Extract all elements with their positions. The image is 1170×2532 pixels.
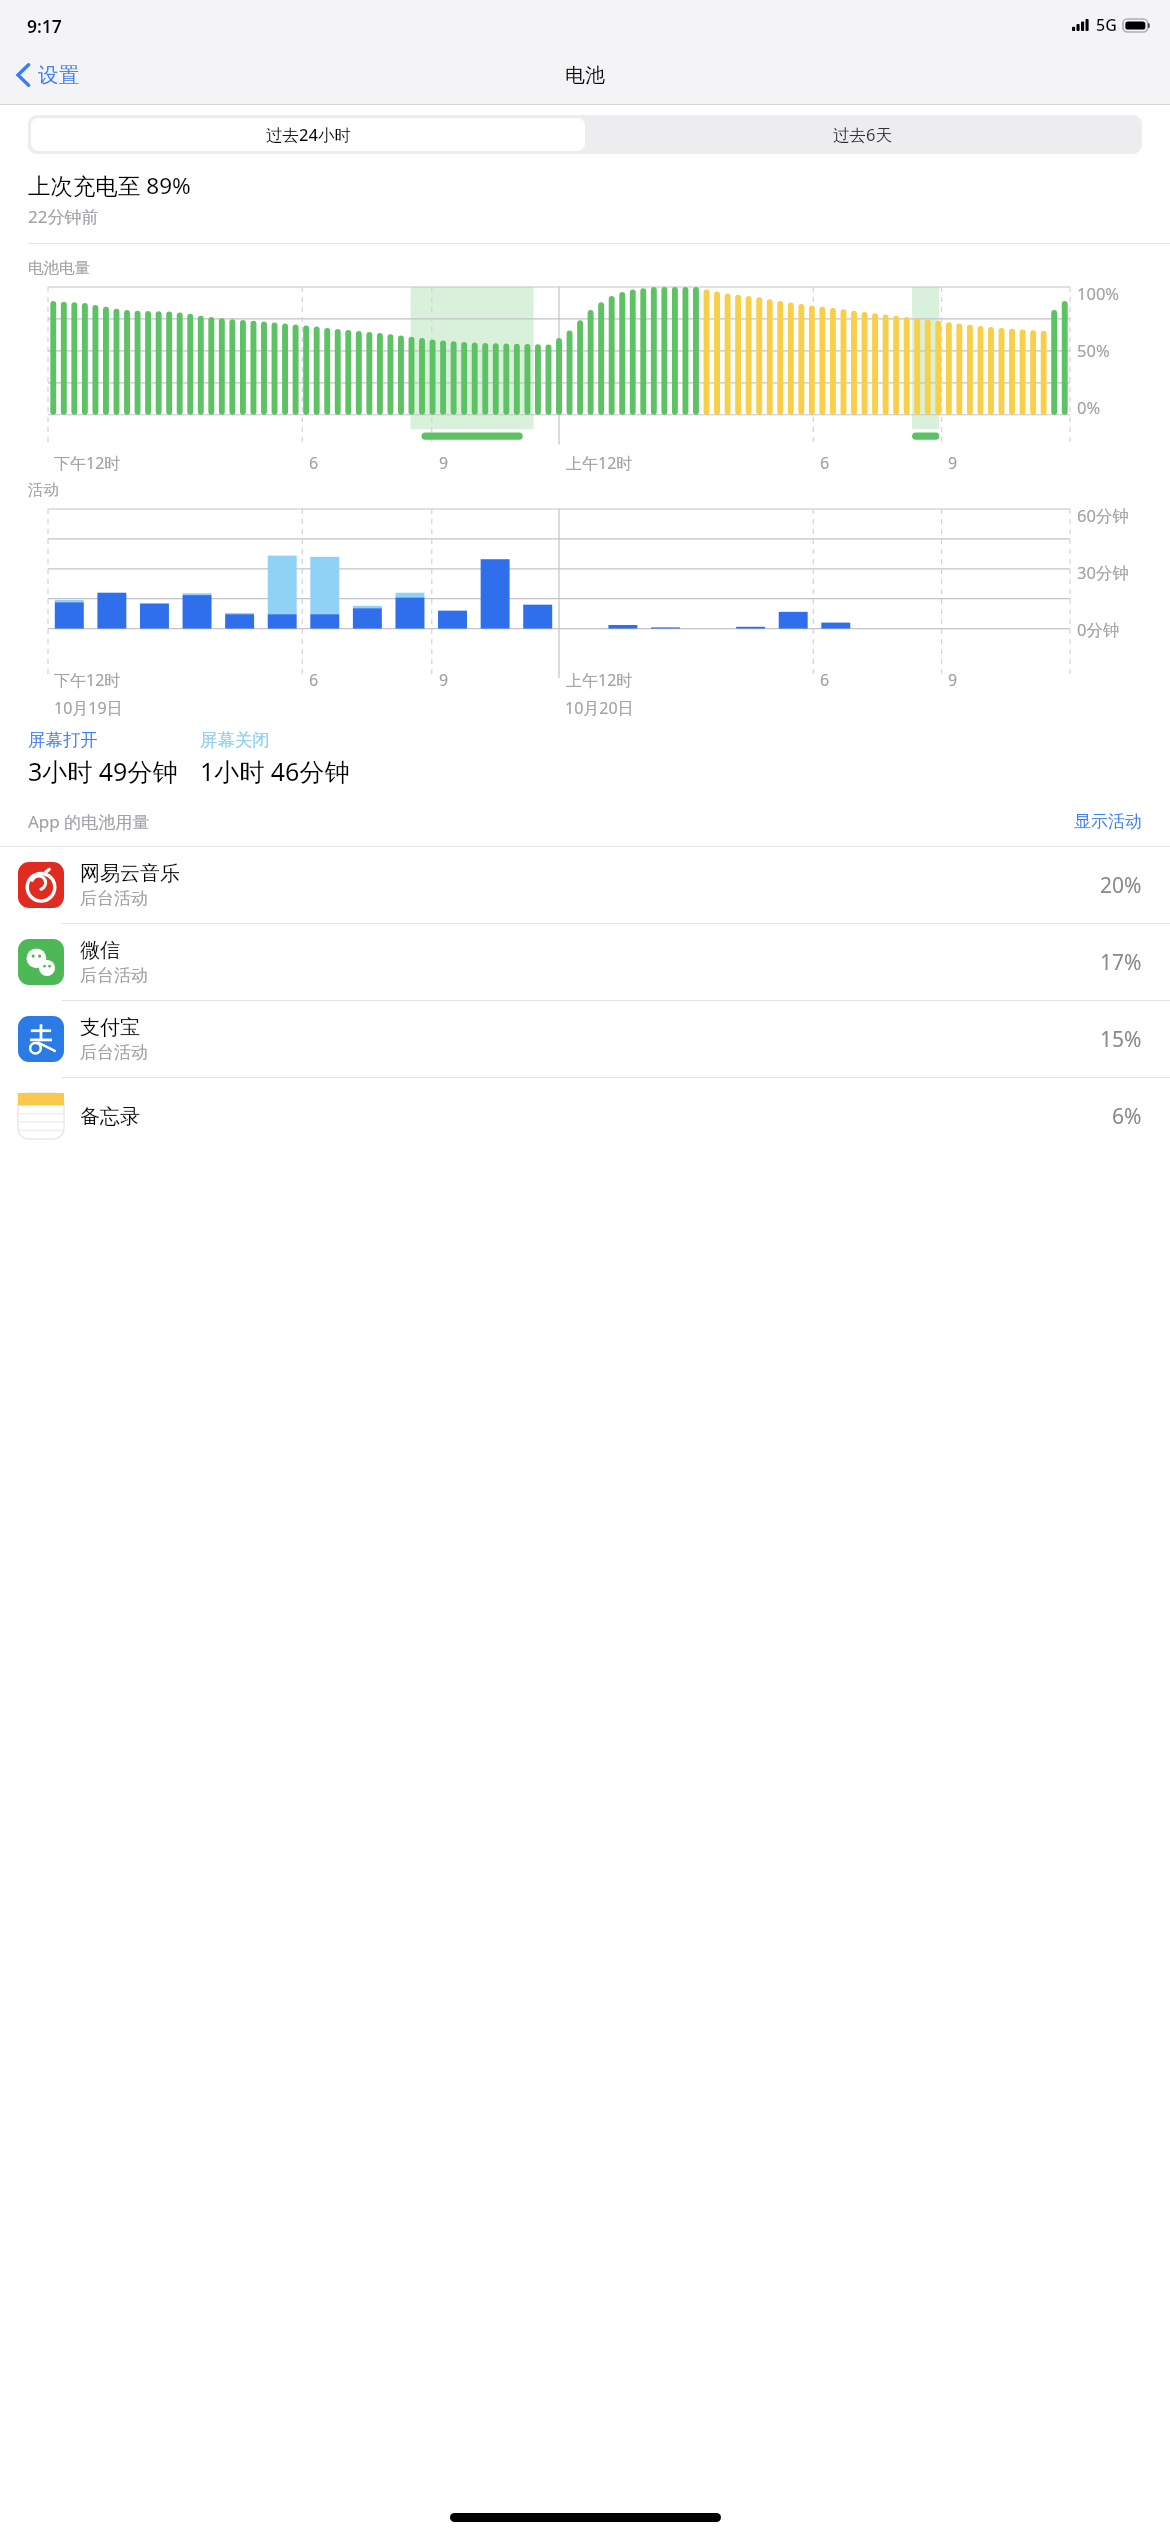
staticText: 电池 (565, 63, 605, 88)
staticText: 后台活动 (80, 1042, 148, 1063)
staticText: 22分钟前 (28, 205, 99, 228)
button[interactable]: 支付宝 (0, 1001, 1170, 1077)
staticText: 下午12时 (54, 669, 121, 691)
staticText: 活动 (28, 480, 59, 500)
staticText: 过去6天 (833, 123, 892, 146)
button[interactable]: 网易云音乐 (0, 847, 1170, 923)
staticText: 20% (1100, 871, 1142, 900)
staticText: 显示活动 (1074, 811, 1142, 832)
staticText: 后台活动 (80, 888, 148, 909)
staticText: 10月20日 (565, 697, 634, 719)
staticText: 上次充电至 89% (28, 170, 191, 201)
staticText: 15% (1100, 1025, 1142, 1054)
staticText: 屏幕关闭 (200, 729, 270, 751)
staticText: 支付宝 (80, 1015, 140, 1040)
button[interactable]: 微信 (0, 924, 1170, 1000)
staticText: 上午12时 (566, 669, 633, 691)
staticText: 0分钟 (1077, 618, 1120, 641)
staticText: 6 (309, 669, 319, 691)
staticText: 电池电量 (28, 258, 90, 278)
staticText: 后台活动 (80, 965, 148, 986)
staticText: 上午12时 (566, 452, 633, 474)
staticText: 屏幕打开 (28, 729, 98, 751)
staticText: 0% (1077, 396, 1101, 418)
button[interactable]: 过去24小时 (31, 118, 585, 151)
staticText: 6 (820, 669, 830, 691)
staticText: 过去24小时 (266, 123, 351, 146)
staticText: 微信 (80, 938, 120, 963)
button[interactable]: 备忘录 (0, 1078, 1170, 1154)
staticText: App 的电池用量 (28, 810, 1074, 833)
button[interactable]: 显示活动 (1074, 811, 1142, 832)
staticText: 3小时 49分钟 (28, 754, 178, 788)
staticText: 9 (439, 452, 449, 474)
staticText: 9:17 (27, 14, 62, 38)
staticText: 下午12时 (54, 452, 121, 474)
staticText: 6% (1112, 1102, 1142, 1131)
staticText: 100% (1077, 282, 1120, 304)
button[interactable]: 过去6天 (585, 118, 1139, 151)
staticText: 5G (1096, 14, 1117, 36)
staticText: 30分钟 (1077, 561, 1129, 584)
staticText: 17% (1100, 948, 1142, 977)
staticText: 9 (948, 452, 958, 474)
button[interactable]: 设置 (0, 54, 91, 96)
staticText: 50% (1077, 339, 1110, 361)
staticText: 10月19日 (54, 697, 123, 719)
staticText: 9 (948, 669, 958, 691)
staticText: 设置 (38, 62, 79, 88)
staticText: 6 (820, 452, 830, 474)
staticText: 网易云音乐 (80, 861, 180, 886)
staticText: 备忘录 (80, 1104, 140, 1129)
staticText: 6 (309, 452, 319, 474)
staticText: 9 (439, 669, 449, 691)
staticText: 1小时 46分钟 (200, 754, 350, 788)
staticText: 60分钟 (1077, 504, 1129, 527)
